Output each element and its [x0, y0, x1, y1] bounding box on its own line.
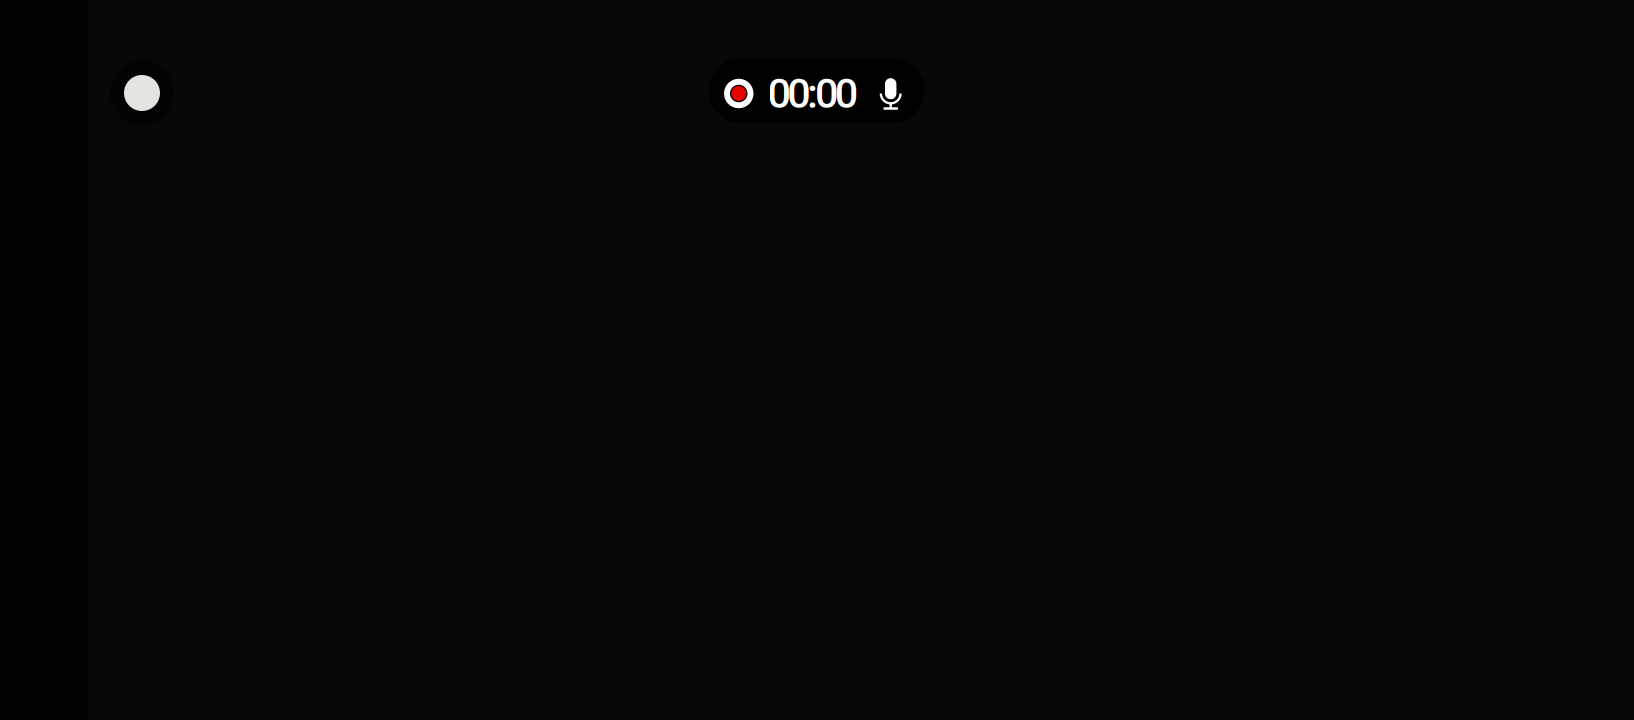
button[interactable]: Stop recording [110, 61, 174, 125]
button[interactable]: Microphone [858, 74, 902, 107]
staticText: 00:00 [767, 69, 858, 118]
button[interactable]: 00:00 [725, 66, 858, 115]
